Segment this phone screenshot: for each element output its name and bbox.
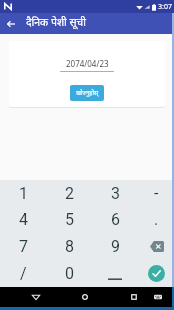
staticText: 4 [19,210,28,229]
button[interactable]: 7 [0,233,46,260]
other: Backspace [147,240,165,253]
button[interactable]: 2 [46,180,92,206]
staticText: 9 [111,237,120,256]
staticText: 8 [65,237,74,256]
button[interactable]: Back [0,13,22,34]
staticText: - [154,184,159,203]
button[interactable] [92,260,138,287]
staticText: . [154,210,159,229]
button[interactable]: 1 [0,180,46,206]
staticText: 3 [111,184,120,203]
button[interactable]: Hide keyboard [146,287,170,307]
button[interactable]: 9 [92,233,138,260]
button[interactable]: 8 [46,233,92,260]
staticText: दैनिक पेशी सूची [26,17,86,31]
button[interactable]: 4 [0,206,46,233]
staticText: 7 [19,237,28,256]
staticText: / [20,264,27,283]
button[interactable]: खोज्नुहोस् [70,85,104,101]
button[interactable]: Recents [122,287,146,307]
staticText: खोज्नुहोस् [76,89,99,97]
button[interactable]: Back [24,287,48,307]
button[interactable]: 0 [46,260,92,287]
button[interactable]: Backspace [138,233,174,260]
button[interactable]: Confirm [148,265,165,282]
button[interactable]: 3 [92,180,138,206]
button[interactable]: Confirm [138,260,174,287]
staticText: 6 [111,210,120,229]
staticText: 1 [19,184,28,203]
staticText: 5 [65,210,74,229]
button[interactable]: / [0,260,46,287]
staticText: 3:07 [158,2,172,12]
staticText: 2074/04/23 [66,58,109,69]
button[interactable]: . [138,206,174,233]
button[interactable]: - [138,180,174,206]
button[interactable]: 6 [92,206,138,233]
staticText: 0 [65,264,74,283]
button[interactable]: Home [73,287,97,307]
staticText: 2 [65,184,74,203]
button[interactable]: 5 [46,206,92,233]
